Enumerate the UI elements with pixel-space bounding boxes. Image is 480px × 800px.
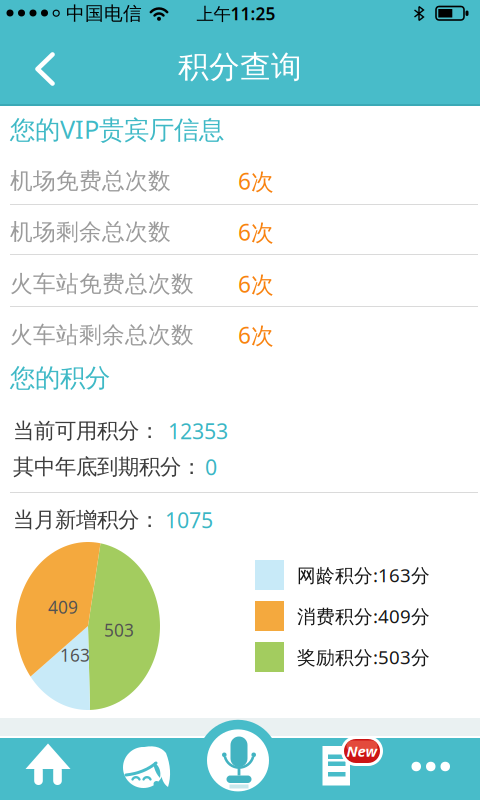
staticText: 6次 (238, 217, 274, 247)
staticText: 1075 (165, 506, 213, 534)
staticText: 奖励积分:503分 (297, 645, 430, 669)
button[interactable]: 账单 (316, 730, 390, 794)
button[interactable]: 返回 (20, 40, 70, 92)
staticText: 12353 (168, 417, 228, 445)
staticText: 6次 (238, 269, 274, 299)
staticText: 您的积分 (10, 362, 110, 393)
staticText: 网龄积分:163分 (297, 563, 430, 587)
staticText: 163 (60, 643, 90, 666)
staticText: 6次 (238, 320, 274, 350)
button[interactable]: 客服 (110, 740, 176, 798)
staticText: 503 (104, 618, 134, 641)
staticText: 409 (48, 595, 78, 618)
staticText: 火车站剩余总次数 (10, 321, 194, 349)
button[interactable]: 更多 (404, 744, 460, 788)
staticText: New (346, 741, 377, 761)
staticText: 您的VIP贵宾厅信息 (10, 112, 224, 146)
button[interactable]: 语音 (196, 718, 280, 800)
staticText: 上午11:25 (196, 2, 275, 25)
button[interactable]: 首页 (14, 740, 82, 798)
staticText: 机场免费总次数 (10, 167, 171, 195)
staticText: 积分查询 (178, 48, 302, 86)
staticText: 消费积分:409分 (297, 604, 430, 628)
staticText: 火车站免费总次数 (10, 270, 194, 298)
staticText: 中国电信 (66, 2, 142, 25)
staticText: 6次 (238, 166, 274, 196)
staticText: 机场剩余总次数 (10, 218, 171, 246)
staticText: 其中年底到期积分： (13, 454, 202, 480)
staticText: 0 (205, 453, 217, 481)
staticText: 当月新增积分： (13, 507, 160, 533)
staticText: 当前可用积分： (13, 418, 160, 444)
